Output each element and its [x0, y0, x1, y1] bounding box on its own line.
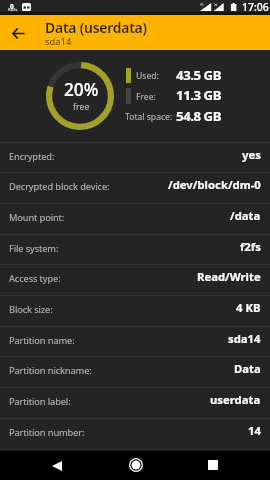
button[interactable]: Block size: — [0, 296, 270, 326]
staticText: /dev/block/dm-0 — [168, 177, 261, 192]
staticText: Partition name: — [9, 334, 75, 347]
button[interactable]: Decrypted block device: — [0, 173, 270, 203]
staticText: Partition label: — [9, 395, 71, 408]
staticText: 20% — [64, 78, 99, 101]
staticText: f2fs — [240, 239, 261, 254]
staticText: Data (userdata) — [45, 18, 147, 37]
button[interactable]: Back — [45, 451, 69, 480]
staticText: free — [73, 101, 90, 113]
staticText: Access type: — [9, 272, 61, 285]
staticText: sda14 — [228, 331, 261, 346]
button[interactable]: Access type: — [0, 265, 270, 295]
button[interactable]: Mount point: — [0, 204, 270, 234]
staticText: 43.5 GB — [159, 66, 221, 84]
staticText: KB/s — [8, 7, 18, 13]
button[interactable]: Partition nickname: — [0, 357, 270, 387]
staticText: Encrypted: — [9, 150, 55, 163]
button[interactable]: Partition number: — [0, 419, 270, 449]
staticText: yes — [242, 147, 261, 162]
staticText: 14 — [248, 423, 261, 438]
button[interactable]: Recents — [201, 451, 225, 480]
button[interactable]: Home — [124, 451, 148, 480]
button[interactable]: Back — [2, 17, 34, 49]
staticText: /data — [230, 208, 261, 223]
staticText: Decrypted block device: — [9, 180, 110, 193]
staticText: Total space: — [125, 111, 173, 123]
staticText: 54.8 GB — [159, 107, 221, 125]
staticText: userdata — [210, 392, 261, 407]
staticText: 0 — [10, 2, 14, 11]
staticText: Mount point: — [9, 211, 65, 224]
staticText: File system: — [9, 242, 59, 255]
staticText: Partition number: — [9, 426, 85, 439]
staticText: 4 KB — [236, 300, 261, 315]
staticText: Free: — [136, 91, 156, 103]
button[interactable]: File system: — [0, 235, 270, 265]
staticText: Block size: — [9, 303, 53, 316]
staticText: Partition nickname: — [9, 364, 92, 377]
staticText: 17:06 — [242, 0, 269, 14]
button[interactable]: Partition name: — [0, 327, 270, 357]
staticText: Used: — [136, 70, 159, 82]
staticText: 11.3 GB — [159, 86, 221, 104]
staticText: Read/Write — [197, 269, 261, 284]
staticText: Data — [234, 361, 261, 376]
button[interactable]: Partition label: — [0, 388, 270, 418]
button[interactable]: Encrypted: — [0, 143, 270, 173]
staticText: sda14 — [45, 35, 72, 48]
